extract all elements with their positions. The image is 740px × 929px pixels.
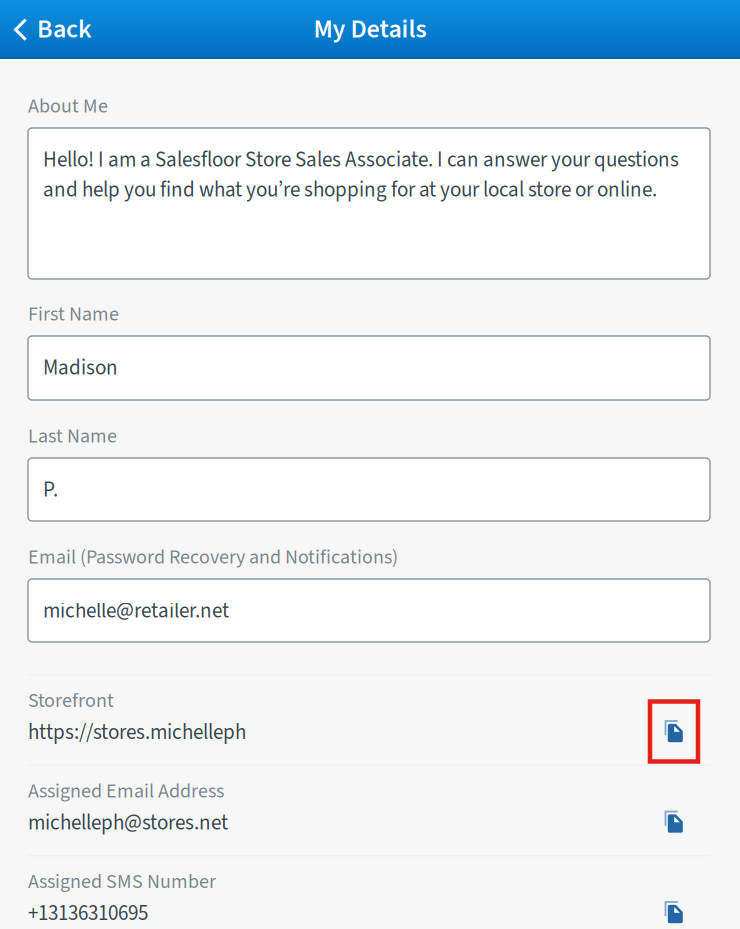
button[interactable]: Copy Assigned Email Address [650, 792, 710, 852]
button[interactable]: Hello! I am a Salesfloor Store Sales Ass… [28, 128, 710, 279]
staticText: +13136310695 [28, 898, 148, 928]
staticText: P. [43, 475, 58, 505]
staticText: My Details [313, 11, 426, 48]
staticText: Last Name [28, 422, 117, 450]
staticText: Hello! I am a Salesfloor Store Sales Ass… [43, 145, 679, 205]
staticText: https://stores.michelleph [28, 717, 246, 747]
staticText: michelle@retailer.net [43, 596, 229, 626]
button[interactable]: Copy Storefront [650, 701, 710, 761]
staticText: Madison [43, 353, 118, 383]
button[interactable]: Madison [28, 336, 710, 400]
button[interactable]: michelle@retailer.net [28, 579, 710, 642]
staticText: About Me [28, 92, 108, 120]
staticText: Assigned Email Address [28, 777, 224, 805]
staticText: First Name [28, 300, 119, 328]
staticText: Storefront [28, 686, 114, 715]
button[interactable]: P. [28, 458, 710, 521]
button[interactable]: Copy Assigned SMS Number [650, 882, 710, 929]
button[interactable]: Back [0, 0, 108, 59]
staticText: Email (Password Recovery and Notificatio… [28, 543, 398, 571]
staticText: Back [37, 11, 92, 48]
staticText: michelleph@stores.net [28, 808, 228, 838]
staticText: Assigned SMS Number [28, 867, 216, 896]
